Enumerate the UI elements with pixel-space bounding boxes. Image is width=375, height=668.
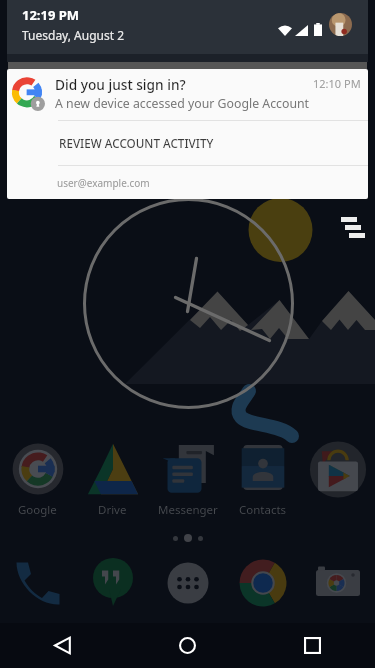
staticText: REVIEW ACCOUNT ACTIVITY [59, 135, 214, 151]
button[interactable]: Google [0, 440, 75, 526]
button[interactable]: Home [125, 623, 250, 668]
button[interactable]: Recent apps [250, 623, 375, 668]
button[interactable]: Contacts [225, 440, 300, 526]
staticText: Did you just sign in? [55, 75, 186, 94]
staticText: 12:19 PM [22, 6, 80, 24]
staticText: Google [18, 502, 57, 518]
staticText: A new device accessed your Google Accoun… [55, 95, 310, 112]
button[interactable]: REVIEW ACCOUNT ACTIVITY [7, 121, 368, 165]
button[interactable]: Camera [300, 558, 375, 608]
staticText: Drive [98, 502, 127, 518]
button[interactable]: Messenger [150, 440, 225, 526]
staticText: user@example.com [57, 176, 150, 190]
staticText: Tuesday, August 2 [22, 27, 125, 43]
button[interactable]: Hangouts [75, 558, 150, 608]
button[interactable]: Did you just sign in? [7, 69, 368, 199]
button[interactable]: Chrome [225, 558, 300, 608]
button[interactable] [300, 440, 375, 526]
staticText: Contacts [239, 502, 287, 518]
button[interactable]: All apps [150, 558, 225, 608]
staticText: Messenger [158, 502, 218, 518]
button[interactable]: Profile [329, 13, 352, 36]
button[interactable]: Wallpaper options [341, 211, 368, 238]
button[interactable]: Drive [75, 440, 150, 526]
button[interactable]: Back [0, 623, 125, 668]
staticText: 12:10 PM [313, 76, 361, 91]
button[interactable]: Phone [0, 558, 75, 608]
